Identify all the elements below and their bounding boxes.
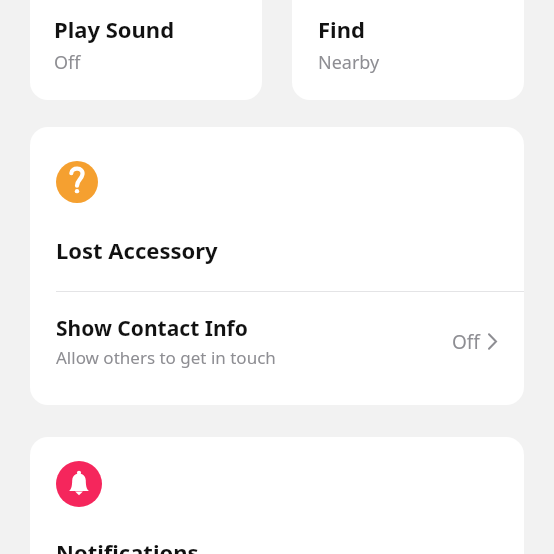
- staticText: Notifications: [56, 537, 199, 554]
- staticText: Nearby: [318, 50, 380, 75]
- staticText: Off: [54, 50, 81, 75]
- staticText: Allow others to get in touch: [56, 346, 276, 369]
- button[interactable]: Notifications: [30, 437, 524, 554]
- button[interactable]: Lost Accessory help: [30, 127, 524, 279]
- staticText: Show Contact Info: [56, 314, 248, 343]
- button[interactable]: Play Sound: [30, 0, 262, 100]
- other: Lost Accessory help: [56, 161, 98, 203]
- staticText: Play Sound: [54, 14, 175, 44]
- staticText: Lost Accessory: [56, 235, 218, 265]
- button[interactable]: Find: [292, 0, 524, 100]
- staticText: Off: [452, 329, 480, 355]
- other: Notifications: [56, 461, 102, 507]
- button[interactable]: Show Contact Info: [30, 292, 524, 389]
- staticText: Find: [318, 14, 365, 44]
